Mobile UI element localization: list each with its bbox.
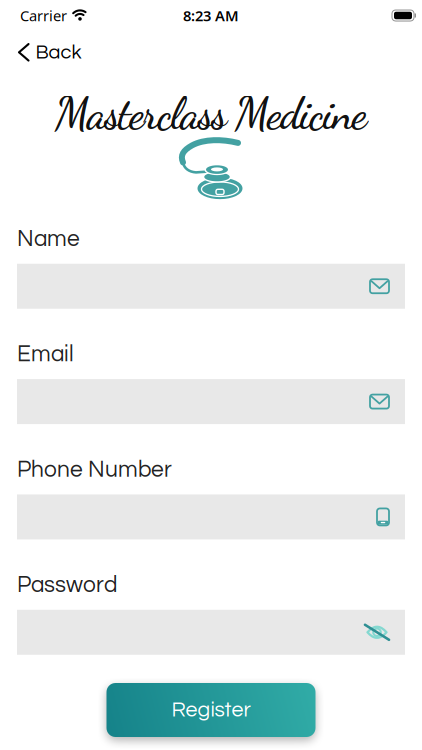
button[interactable]: Email text field [17, 379, 405, 424]
staticText: Phone Number [17, 458, 172, 481]
staticText: Name [17, 227, 80, 251]
staticText: Carrier [20, 6, 67, 25]
staticText: 8:23 AM [183, 6, 239, 25]
button[interactable]: Phone Number text field [17, 494, 405, 539]
staticText: Register [171, 699, 250, 721]
staticText: Masterclass Medicine [55, 88, 367, 140]
staticText: Email [17, 343, 74, 366]
button[interactable]: Register [106, 683, 315, 737]
button[interactable]: Password text field [17, 610, 405, 655]
staticText: Password [17, 573, 117, 597]
button[interactable]: Name text field [17, 264, 405, 309]
staticText: Back [35, 42, 81, 63]
button[interactable]: Back [19, 34, 81, 71]
